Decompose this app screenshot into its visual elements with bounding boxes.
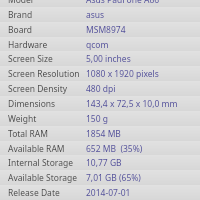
staticText: Hardware (8, 39, 48, 51)
staticText: 5,00 inches (86, 53, 131, 65)
staticText: Model (8, 0, 34, 6)
staticText: Screen Resolution (8, 68, 80, 80)
staticText: 2014-07-01 (86, 187, 131, 199)
staticText: Dimensions (8, 98, 56, 110)
staticText: MSM8974 (86, 24, 126, 36)
staticText: 10,77 GB (86, 157, 122, 169)
staticText: Weight (8, 113, 37, 125)
staticText: Board (8, 24, 33, 36)
staticText: 480 dpi (86, 83, 116, 95)
staticText: 1854 MB (86, 128, 121, 140)
staticText: Available RAM (8, 143, 65, 155)
staticText: Total RAM (8, 128, 48, 140)
staticText: qcom (86, 39, 109, 51)
staticText: Release Date (8, 187, 60, 199)
staticText: Screen Density (8, 83, 68, 95)
staticText: asus (86, 9, 105, 21)
staticText: 652 MB (35%) (86, 143, 143, 155)
staticText: 150 g (86, 113, 109, 125)
staticText: 1080 x 1920 pixels (86, 68, 159, 80)
staticText: Brand (8, 9, 33, 21)
staticText: Available Storage (8, 172, 78, 184)
staticText: Screen Size (8, 53, 53, 65)
staticText: 143,4 x 72,5 x 10,0 mm (86, 98, 178, 110)
staticText: Asus PadFone A86 (86, 0, 160, 6)
staticText: 7,01 GB (65%) (86, 172, 141, 184)
staticText: Internal Storage (8, 157, 73, 169)
